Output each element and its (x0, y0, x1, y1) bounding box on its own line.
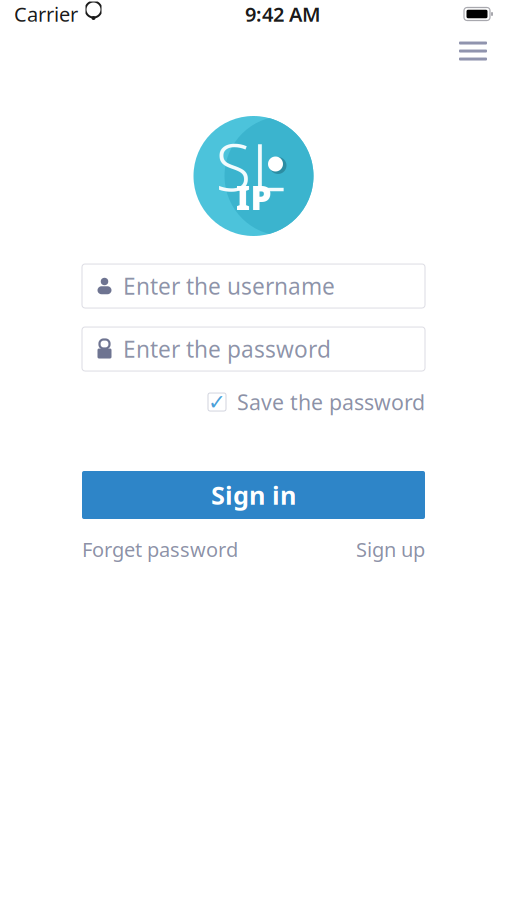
staticText: Sign in (211, 478, 296, 512)
staticText: ✓ (208, 390, 226, 414)
staticText: Save the password (237, 388, 425, 416)
staticText: Carrier (14, 1, 78, 27)
button[interactable]: Sign in (82, 471, 425, 519)
staticText: IP (235, 175, 271, 219)
staticText: 9:42 AM (245, 1, 321, 27)
button[interactable]: Sign up (356, 530, 425, 569)
button[interactable]: Forget password (82, 530, 238, 569)
staticText: Sign up (356, 536, 425, 563)
staticText: Enter the username (123, 271, 335, 301)
staticText: Forget password (82, 536, 238, 563)
staticText: Enter the password (123, 334, 331, 364)
button[interactable]: Menu (449, 31, 497, 70)
button[interactable]: ✓ (82, 387, 425, 417)
staticText: SL (215, 123, 285, 209)
